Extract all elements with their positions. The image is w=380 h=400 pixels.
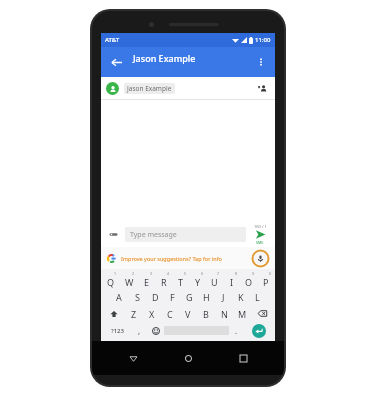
button[interactable]: 2: [120, 271, 138, 288]
button[interactable]: F: [164, 288, 181, 305]
staticText: Type message: [130, 230, 177, 240]
staticText: N: [221, 308, 228, 320]
staticText: Z: [131, 308, 137, 320]
staticText: P: [263, 276, 269, 288]
staticText: 160 / 1: [254, 224, 267, 229]
staticText: G: [186, 291, 193, 303]
staticText: D: [152, 291, 159, 303]
staticText: 6: [201, 271, 204, 276]
staticText: 5: [184, 271, 187, 276]
staticText: 8: [235, 271, 238, 276]
staticText: 11:00: [255, 36, 271, 44]
button[interactable]: H: [198, 288, 215, 305]
button[interactable]: Add person: [254, 80, 270, 96]
button[interactable]: Jason Example: [101, 77, 275, 99]
button[interactable]: 8: [223, 271, 240, 288]
button[interactable]: 0: [257, 271, 274, 288]
button[interactable]: Back: [106, 52, 126, 72]
staticText: 4: [167, 271, 170, 276]
staticText: Jason Example: [133, 52, 196, 64]
button[interactable]: More options: [252, 53, 270, 71]
button[interactable]: Voice input: [252, 250, 269, 267]
button[interactable]: M: [233, 305, 251, 322]
staticText: T: [178, 276, 184, 288]
staticText: Jason Example: [127, 84, 172, 93]
button[interactable]: Shift: [102, 305, 125, 322]
staticText: AT&T: [105, 36, 120, 44]
button[interactable]: Emoji: [147, 322, 164, 339]
staticText: H: [203, 291, 210, 303]
button[interactable]: B: [197, 305, 215, 322]
staticText: Y: [195, 276, 201, 288]
button[interactable]: 4: [155, 271, 172, 288]
staticText: Improve your suggestions? Tap for info: [121, 255, 222, 262]
button[interactable]: D: [146, 288, 164, 305]
button[interactable]: X: [143, 305, 161, 322]
staticText: 0: [269, 271, 272, 276]
button[interactable]: G: [181, 288, 198, 305]
button[interactable]: 5: [172, 271, 189, 288]
staticText: 9: [252, 271, 255, 276]
staticText: S: [135, 291, 140, 303]
button[interactable]: L: [249, 288, 266, 305]
button[interactable]: K: [232, 288, 249, 305]
button[interactable]: Type message: [125, 227, 246, 242]
button[interactable]: 3: [138, 271, 155, 288]
staticText: F: [170, 291, 175, 303]
button[interactable]: Home: [181, 351, 195, 365]
button[interactable]: S: [128, 288, 146, 305]
button[interactable]: Backspace: [251, 305, 274, 322]
button[interactable]: ,: [132, 322, 147, 339]
staticText: W: [125, 276, 134, 288]
staticText: ,: [138, 325, 141, 336]
staticText: 7: [217, 271, 220, 276]
button[interactable]: Z: [125, 305, 143, 322]
staticText: ?123: [111, 327, 124, 335]
staticText: K: [238, 291, 244, 303]
button[interactable]: ?123: [103, 322, 132, 339]
button[interactable]: 6: [189, 271, 206, 288]
staticText: I: [230, 276, 234, 288]
staticText: B: [203, 308, 209, 320]
staticText: 1: [114, 271, 117, 276]
button[interactable]: 9: [240, 271, 257, 288]
button[interactable]: 7: [206, 271, 223, 288]
button[interactable]: Back: [126, 351, 140, 365]
staticText: C: [167, 308, 173, 320]
button[interactable]: A: [110, 288, 128, 305]
staticText: 2: [132, 271, 135, 276]
staticText: J: [222, 291, 225, 303]
staticText: .: [235, 325, 238, 336]
staticText: R: [161, 276, 167, 288]
staticText: M: [238, 308, 247, 320]
button[interactable]: Recent apps: [236, 351, 250, 365]
staticText: U: [211, 276, 218, 288]
button[interactable]: Attach: [106, 227, 120, 241]
button[interactable]: C: [161, 305, 179, 322]
staticText: X: [149, 308, 155, 320]
button[interactable]: .: [229, 322, 244, 339]
button[interactable]: N: [215, 305, 233, 322]
staticText: L: [255, 291, 260, 303]
staticText: Q: [107, 276, 115, 288]
button[interactable]: Send: [250, 224, 270, 245]
staticText: A: [116, 291, 122, 303]
staticText: O: [245, 276, 253, 288]
staticText: 3: [150, 271, 153, 276]
staticText: SMS: [256, 240, 264, 245]
staticText: V: [185, 308, 191, 320]
button[interactable]: Improve your suggestions? Tap for info: [101, 247, 275, 269]
button[interactable]: Enter: [252, 324, 266, 338]
staticText: E: [144, 276, 150, 288]
button[interactable]: 1: [102, 271, 120, 288]
button[interactable]: J: [215, 288, 232, 305]
button[interactable]: V: [179, 305, 197, 322]
